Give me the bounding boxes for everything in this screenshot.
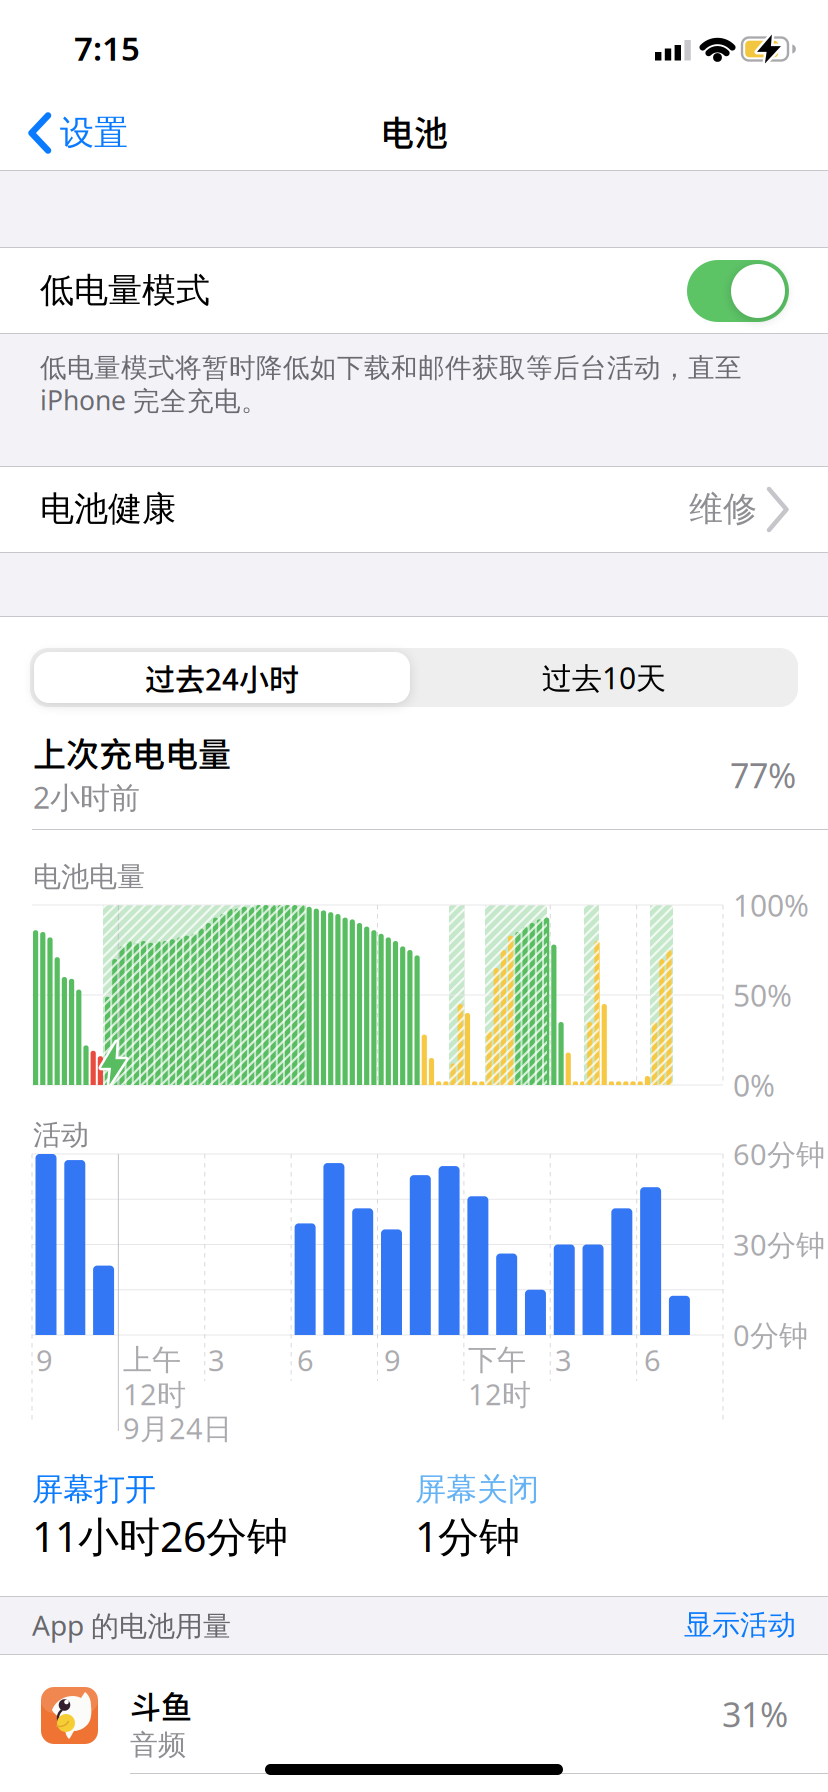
staticText: 设置	[60, 112, 128, 154]
staticText: 6	[297, 1340, 314, 1380]
button[interactable]: 返回设置	[29, 103, 128, 163]
staticText: 50%	[733, 975, 792, 1015]
staticText: 9月24日	[123, 1408, 232, 1448]
staticText: 电池电量	[33, 859, 145, 895]
staticText: 音频	[130, 1727, 186, 1763]
staticText: 60分钟	[733, 1134, 825, 1174]
staticText: 31%	[722, 1691, 788, 1737]
staticText: App 的电池用量	[32, 1606, 231, 1644]
button[interactable]: 屏幕关闭	[415, 1470, 539, 1564]
staticText: iPhone 完全充电。	[40, 382, 268, 418]
staticText: 77%	[730, 752, 796, 798]
staticText: 过去10天	[542, 657, 666, 698]
staticText: 0%	[733, 1065, 775, 1105]
staticText: 电池	[380, 106, 448, 156]
staticText: 30分钟	[733, 1225, 825, 1264]
staticText: 0分钟	[733, 1315, 808, 1355]
button[interactable]: 斗鱼	[0, 1655, 828, 1792]
staticText: 斗鱼	[130, 1683, 192, 1727]
button[interactable]: 屏幕打开	[32, 1470, 288, 1564]
staticText: 3	[555, 1340, 572, 1380]
staticText: 低电量模式	[40, 269, 210, 312]
staticText: 9	[36, 1340, 53, 1380]
button[interactable]: 低电量模式	[687, 260, 789, 322]
staticText: 2小时前	[33, 777, 140, 817]
button[interactable]: 显示活动	[684, 1607, 796, 1643]
button[interactable]: 过去24小时	[34, 652, 410, 703]
staticText: 100%	[733, 885, 809, 925]
staticText: 上午	[123, 1342, 181, 1378]
staticText: 6	[644, 1340, 661, 1380]
staticText: 1分钟	[415, 1508, 520, 1564]
staticText: 9	[384, 1340, 401, 1380]
staticText: 活动	[33, 1117, 89, 1153]
staticText: 屏幕关闭	[415, 1470, 539, 1509]
staticText: 显示活动	[684, 1607, 796, 1643]
staticText: 3	[208, 1340, 225, 1380]
staticText: 电池健康	[40, 488, 176, 530]
staticText: 12时	[123, 1374, 186, 1414]
staticText: 7:15	[74, 25, 140, 70]
staticText: 过去24小时	[145, 656, 299, 699]
staticText: 上次充电电量	[33, 728, 231, 776]
staticText: 维修	[689, 488, 757, 530]
button[interactable]: 过去10天	[412, 648, 796, 707]
staticText: 11小时26分钟	[32, 1508, 288, 1564]
button[interactable]: 电池健康	[0, 467, 828, 553]
staticText: 下午	[468, 1342, 526, 1378]
staticText: 12时	[468, 1374, 531, 1414]
staticText: 低电量模式将暂时降低如下载和邮件获取等后台活动，直至	[40, 351, 742, 385]
staticText: 屏幕打开	[32, 1470, 156, 1509]
